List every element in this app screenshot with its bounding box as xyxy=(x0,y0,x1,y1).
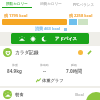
button[interactable]: 体重 xyxy=(0,63,29,75)
staticText: 体重 xyxy=(12,63,18,67)
button[interactable]: 体重グラフ xyxy=(0,76,100,84)
button[interactable]: Dinner xyxy=(41,36,47,42)
staticText: カラダ記録 xyxy=(15,50,39,56)
staticText: 体脂肪 xyxy=(40,63,49,67)
button[interactable]: 消費カロリー xyxy=(34,0,67,9)
staticText: 残 1795 kcal xyxy=(4,13,28,18)
staticText: 摂取カロリー xyxy=(6,2,28,7)
button[interactable]: Breakfast xyxy=(19,36,25,42)
button[interactable]: Goal xyxy=(78,50,83,55)
staticText: PFCバランス xyxy=(73,2,95,7)
staticText: 消費カロリー xyxy=(40,2,62,7)
staticText: 体重グラフ xyxy=(42,78,64,83)
button[interactable]: Breakfast xyxy=(11,33,89,44)
button[interactable]: 睡眠 xyxy=(59,63,89,75)
button[interactable]: 体脂肪 xyxy=(29,63,59,75)
button[interactable]: Edit xyxy=(87,50,92,55)
staticText: 0kcal xyxy=(75,92,84,97)
staticText: 睡眠 xyxy=(71,63,77,67)
button[interactable]: Lunch xyxy=(30,36,36,42)
staticText: 84.9kg xyxy=(7,68,22,74)
button[interactable]: PFCバランス xyxy=(67,0,100,9)
staticText: 消費 463 kcal xyxy=(35,26,61,31)
button[interactable]: 摂取カロリー xyxy=(0,0,34,9)
staticText: 朝食 xyxy=(15,92,24,97)
button[interactable]: 朝食 xyxy=(3,88,84,100)
staticText: 7.0時間 xyxy=(66,68,82,74)
staticText: 残 2258 kcal xyxy=(69,13,93,18)
staticText: -- xyxy=(43,68,46,74)
staticText: アドバイス xyxy=(55,36,77,41)
button[interactable]: Add record xyxy=(86,92,100,100)
